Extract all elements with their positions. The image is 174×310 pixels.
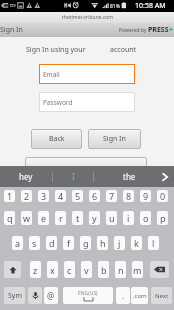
button[interactable]: .	[116, 287, 130, 304]
button[interactable]: Backspace	[150, 261, 169, 278]
button[interactable]: c	[64, 261, 75, 278]
button[interactable]: s	[29, 236, 40, 250]
button[interactable]: 5	[72, 190, 83, 202]
button[interactable]: @	[44, 287, 58, 304]
button[interactable]: a	[12, 236, 23, 250]
button[interactable]: y	[89, 211, 100, 225]
button[interactable]: Back	[31, 129, 82, 149]
button[interactable]: r	[55, 211, 66, 225]
button[interactable]: z	[30, 261, 41, 278]
staticText: hey	[19, 171, 33, 182]
button[interactable]: i	[123, 211, 134, 225]
button[interactable]: j	[114, 236, 125, 250]
staticText: thetimes-tribune.com	[62, 14, 113, 21]
staticText: +	[169, 25, 174, 35]
staticText: u	[109, 212, 115, 224]
button[interactable]: Sym	[4, 287, 25, 304]
staticText: Next	[155, 292, 169, 300]
staticText: j	[118, 237, 121, 249]
button[interactable]: p	[157, 211, 168, 225]
staticText: y	[92, 212, 97, 224]
staticText: account	[110, 45, 137, 55]
button[interactable]: Voice input	[28, 287, 42, 304]
button[interactable]: Email	[39, 64, 135, 84]
staticText: the	[123, 171, 136, 182]
button[interactable]: 8	[123, 190, 134, 202]
button[interactable]: q	[4, 211, 15, 225]
button[interactable]: Sign In	[88, 129, 141, 149]
staticText: Sign In	[0, 25, 23, 35]
staticText: PRESS	[148, 25, 169, 35]
button[interactable]: hey	[0, 166, 52, 187]
staticText: v	[84, 264, 89, 276]
button[interactable]: Create Account	[25, 157, 147, 181]
button[interactable]: I	[53, 166, 93, 187]
staticText: ENG(US)	[78, 290, 98, 297]
button[interactable]: the	[94, 166, 164, 187]
button[interactable]: x	[47, 261, 58, 278]
button[interactable]: d	[46, 236, 57, 250]
button[interactable]: 2	[21, 190, 32, 202]
staticText: Sign In using your	[26, 45, 86, 55]
staticText: a	[15, 237, 21, 249]
staticText: 4	[58, 190, 64, 202]
button[interactable]: 3	[38, 190, 49, 202]
button[interactable]: g	[80, 236, 91, 250]
staticText: k	[134, 237, 139, 249]
staticText: t	[76, 212, 80, 224]
button[interactable]: .com	[131, 287, 148, 304]
button[interactable]: Shift	[4, 261, 21, 278]
staticText: b	[101, 264, 107, 276]
staticText: .	[122, 290, 125, 301]
staticText: n	[118, 264, 124, 276]
staticText: r	[59, 212, 63, 224]
button[interactable]: h	[97, 236, 108, 250]
button[interactable]: e	[38, 211, 49, 225]
staticText: d	[49, 237, 55, 249]
staticText: l	[152, 237, 155, 249]
button[interactable]: 0	[157, 190, 168, 202]
button[interactable]: o	[140, 211, 151, 225]
button[interactable]: b	[98, 261, 109, 278]
staticText: Sign In	[103, 134, 126, 144]
staticText: I	[72, 171, 75, 182]
button[interactable]: Space	[63, 287, 113, 304]
staticText: Password	[43, 98, 73, 107]
button[interactable]: v	[81, 261, 92, 278]
staticText: p	[160, 212, 166, 224]
button[interactable]: 7	[106, 190, 117, 202]
staticText: z	[33, 264, 38, 276]
button[interactable]: n	[115, 261, 126, 278]
button[interactable]: k	[131, 236, 142, 250]
staticText: 6	[92, 190, 98, 202]
staticText: i	[127, 212, 130, 224]
button[interactable]: w	[21, 211, 32, 225]
button[interactable]: m	[132, 261, 143, 278]
staticText: w	[23, 212, 31, 224]
button[interactable]: t	[72, 211, 83, 225]
staticText: 5	[75, 190, 81, 202]
staticText: c	[67, 264, 72, 276]
staticText: f	[67, 237, 71, 249]
button[interactable]: Next	[151, 287, 172, 304]
button[interactable]: l	[148, 236, 159, 250]
button[interactable]: 9	[140, 190, 151, 202]
staticText: 7	[109, 190, 115, 202]
staticText: Email	[43, 70, 60, 79]
staticText: 81%	[110, 3, 120, 10]
staticText: .com	[133, 292, 147, 300]
staticText: m	[133, 264, 142, 276]
button[interactable]: More suggestions	[164, 166, 174, 187]
staticText: 8	[126, 190, 132, 202]
staticText: Back	[49, 134, 65, 144]
staticText: 0	[160, 190, 166, 202]
staticText: s	[32, 237, 37, 249]
button[interactable]: f	[63, 236, 74, 250]
button[interactable]: 1	[4, 190, 15, 202]
button[interactable]: u	[106, 211, 117, 225]
button[interactable]: Password	[39, 92, 135, 112]
staticText: x	[50, 264, 55, 276]
button[interactable]: 6	[89, 190, 100, 202]
button[interactable]: 4	[55, 190, 66, 202]
button[interactable]: Sign In	[0, 23, 23, 37]
